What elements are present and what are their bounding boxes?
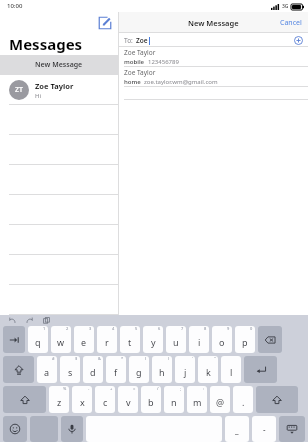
staticText: k	[206, 366, 211, 378]
button[interactable]: 5	[120, 326, 140, 353]
staticText: &	[98, 356, 101, 361]
staticText: o	[219, 336, 225, 348]
staticText: q	[35, 336, 41, 348]
button[interactable]: Key	[244, 356, 277, 383]
button[interactable]: *	[106, 356, 126, 383]
button[interactable]: %	[49, 386, 69, 413]
button[interactable]: Key	[3, 386, 46, 413]
button[interactable]: /	[141, 386, 161, 413]
staticText: To:	[124, 36, 133, 45]
button[interactable]: Undo	[8, 316, 17, 325]
staticText: y	[151, 336, 156, 348]
staticText: r	[105, 336, 109, 348]
staticText: ;	[180, 386, 182, 391]
button[interactable]: "	[198, 356, 218, 383]
staticText: 0	[250, 326, 253, 331]
staticText: f	[114, 366, 118, 378]
staticText: +	[110, 386, 113, 391]
button[interactable]: 2	[51, 326, 71, 353]
button[interactable]: 8	[189, 326, 209, 353]
staticText: Zoe Taylor	[124, 68, 156, 77]
button[interactable]: Key	[279, 416, 305, 442]
button[interactable]: New Message	[0, 55, 118, 75]
staticText: x	[80, 396, 85, 408]
staticText: d	[90, 366, 96, 378]
staticText: $	[75, 356, 78, 361]
button[interactable]: Key	[3, 326, 25, 353]
button[interactable]: l	[221, 356, 241, 383]
button[interactable]: .	[233, 386, 253, 413]
button[interactable]: Key	[258, 326, 282, 353]
button[interactable]: 7	[166, 326, 186, 353]
staticText: New Message	[35, 60, 83, 70]
button[interactable]: $	[60, 356, 80, 383]
staticText: *	[121, 356, 124, 361]
staticText: v	[126, 396, 131, 408]
button[interactable]: 3	[74, 326, 94, 353]
button[interactable]: (	[129, 356, 149, 383]
button[interactable]: ZT	[0, 75, 118, 105]
button[interactable]: 9	[212, 326, 232, 353]
button[interactable]: 4	[97, 326, 117, 353]
staticText: z	[57, 396, 62, 408]
button[interactable]: Paste	[42, 316, 51, 325]
staticText: zoe.taylor.wm@gmail.com	[144, 78, 218, 86]
button[interactable]: :	[187, 386, 207, 413]
button[interactable]: @	[210, 386, 230, 413]
staticText: )	[168, 356, 170, 361]
button[interactable]: =	[118, 386, 138, 413]
staticText: Zoe Taylor	[35, 81, 74, 91]
staticText: #	[52, 356, 55, 361]
staticText: /	[157, 386, 159, 391]
staticText: w	[57, 336, 65, 348]
staticText: Cancel	[280, 18, 302, 28]
button[interactable]: Zoe Taylor	[119, 67, 308, 87]
staticText: a	[44, 366, 50, 378]
button[interactable]: Key	[3, 416, 27, 442]
button[interactable]: 6	[143, 326, 163, 353]
staticText: %	[63, 386, 67, 391]
staticText: n	[171, 396, 177, 408]
button[interactable]: 0	[235, 326, 255, 353]
button[interactable]: '	[175, 356, 195, 383]
button[interactable]: Redo	[25, 316, 34, 325]
button[interactable]: New Message	[97, 15, 113, 31]
staticText: Messages	[9, 34, 83, 54]
staticText: s	[68, 366, 73, 378]
staticText: h	[159, 366, 165, 378]
button[interactable]: Key	[256, 386, 298, 413]
button[interactable]: +	[95, 386, 115, 413]
staticText: _	[235, 424, 239, 435]
button[interactable]: _	[225, 416, 249, 442]
staticText: home	[124, 78, 141, 86]
staticText: 1	[43, 326, 46, 331]
staticText: b	[148, 396, 154, 408]
staticText: m	[193, 396, 202, 408]
staticText: 123456789	[148, 58, 179, 66]
button[interactable]: Key	[61, 416, 83, 442]
staticText: Hi	[35, 92, 41, 100]
staticText: =	[133, 386, 136, 391]
staticText: :	[203, 386, 205, 391]
staticText: i	[198, 336, 201, 348]
button[interactable]: Cancel	[280, 18, 302, 28]
button[interactable]: ;	[164, 386, 184, 413]
button[interactable]: Zoe Taylor	[119, 47, 308, 67]
button[interactable]: Add contact	[294, 36, 303, 45]
button[interactable]: -	[252, 416, 276, 442]
staticText: @	[216, 396, 225, 408]
staticText: 8	[204, 326, 207, 331]
button[interactable]: &	[83, 356, 103, 383]
button[interactable]: )	[152, 356, 172, 383]
staticText: 3G	[282, 3, 289, 10]
staticText: 6	[158, 326, 161, 331]
button[interactable]: 1	[28, 326, 48, 353]
staticText: 9	[227, 326, 230, 331]
button[interactable]: #	[37, 356, 57, 383]
staticText: 7	[181, 326, 184, 331]
button[interactable]: Key	[3, 356, 34, 383]
staticText: e	[81, 336, 87, 348]
button[interactable]: -	[72, 386, 92, 413]
